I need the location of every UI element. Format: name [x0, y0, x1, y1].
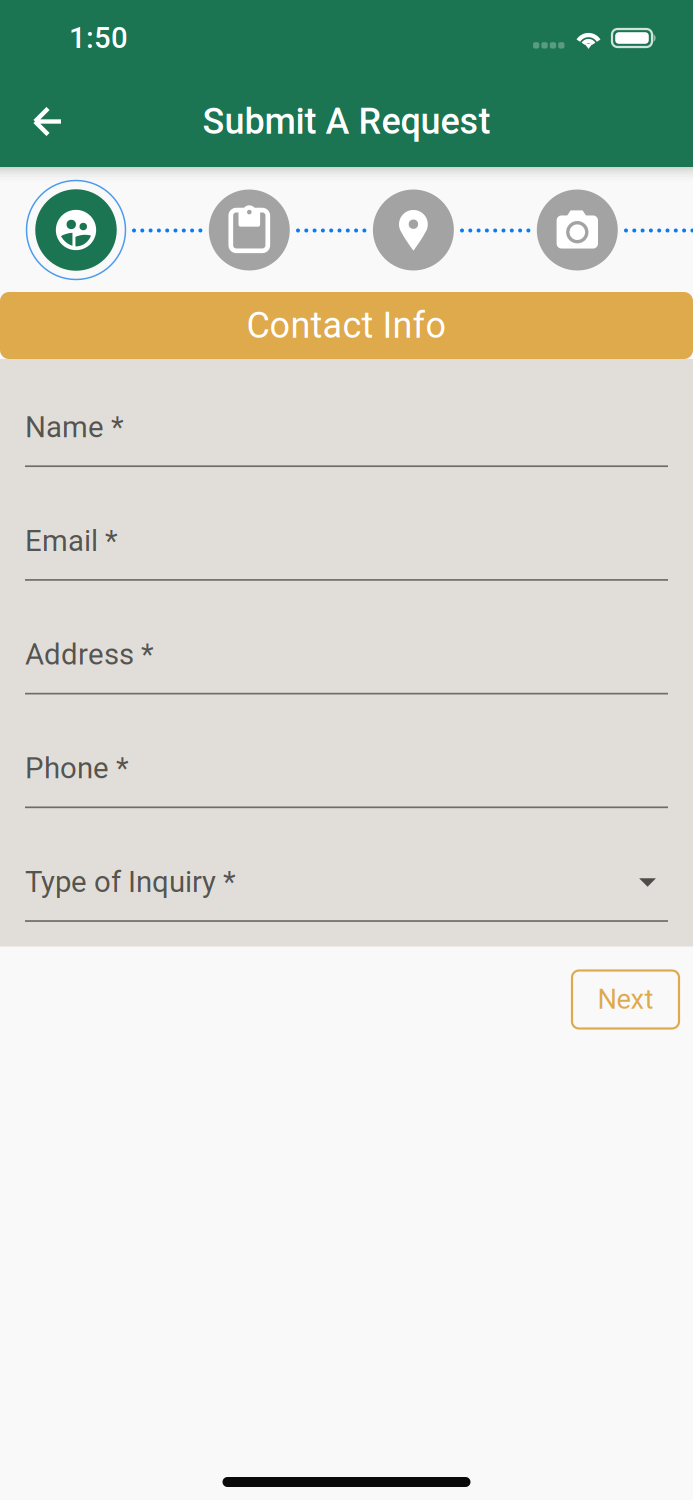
staticText: Phone * — [25, 751, 129, 785]
staticText: Name * — [25, 410, 124, 444]
staticText: Address * — [25, 637, 154, 672]
button[interactable]: Next — [572, 970, 679, 1028]
staticText: 1:50 — [69, 21, 128, 55]
staticText: Submit A Request — [202, 100, 490, 143]
staticText: Contact Info — [246, 304, 446, 347]
staticText: Email * — [25, 524, 118, 558]
staticText: Next — [597, 983, 653, 1015]
staticText: Type of Inquiry * — [25, 865, 236, 899]
button[interactable]: Back — [14, 89, 82, 153]
